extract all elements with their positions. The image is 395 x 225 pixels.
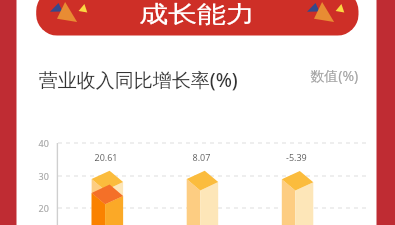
button[interactable]: 成长能力 营业收入同比增长率: [0, 0, 395, 225]
